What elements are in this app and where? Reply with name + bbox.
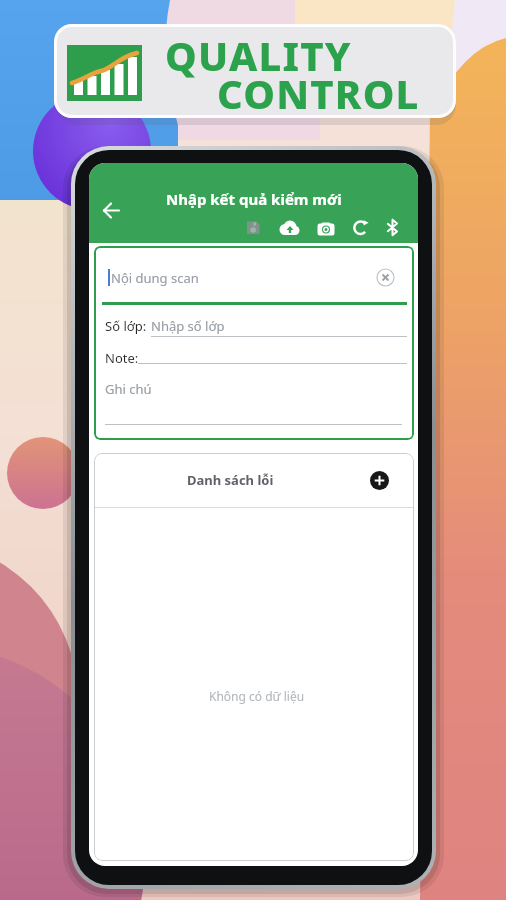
staticText: Danh sách lỗi: [187, 471, 274, 489]
staticText: CONTROL: [217, 66, 420, 118]
staticText: Nhập kết quả kiểm mới: [166, 189, 342, 209]
button[interactable]: [278, 220, 300, 236]
staticText: Không có dữ liệu: [209, 688, 305, 704]
staticText: Nội dung scan: [111, 269, 199, 287]
staticText: Ghi chú: [105, 380, 152, 398]
staticText: Số lớp:: [105, 317, 147, 335]
button[interactable]: [386, 219, 399, 236]
button[interactable]: [352, 219, 369, 236]
staticText: QUALITY: [165, 28, 352, 82]
button[interactable]: QUALITY: [54, 24, 456, 118]
staticText: Note:: [105, 349, 139, 367]
button[interactable]: [377, 269, 394, 286]
button[interactable]: [245, 220, 261, 236]
button[interactable]: [317, 220, 335, 236]
button[interactable]: [103, 202, 120, 219]
button[interactable]: [370, 471, 389, 490]
staticText: Nhập số lớp: [151, 317, 225, 335]
